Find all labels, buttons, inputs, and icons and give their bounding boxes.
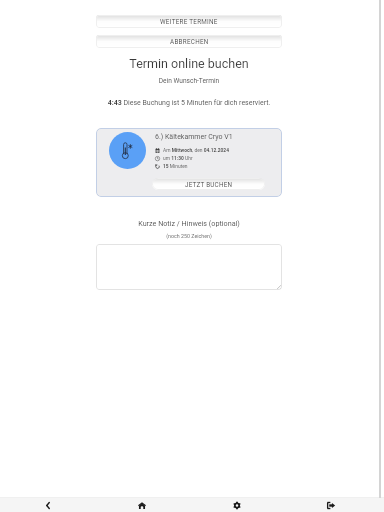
button[interactable]: WEITERE TERMINE	[96, 15, 282, 28]
button[interactable]: ABBRECHEN	[96, 35, 282, 48]
button[interactable]	[96, 244, 282, 290]
staticText: ABBRECHEN	[170, 38, 209, 45]
staticText: Dein Wunsch-Termin	[0, 77, 378, 85]
staticText: Am Mittwoch, den 04.12.2024	[163, 147, 229, 153]
staticText: Kurze Notiz / Hinweis (optional)	[0, 219, 378, 227]
button[interactable]: Home	[128, 498, 156, 512]
button[interactable]: Log out	[317, 498, 345, 512]
button[interactable]: 6.) Kältekammer Cryo V1	[96, 128, 282, 197]
button[interactable]: JETZT BUCHEN	[152, 178, 265, 190]
staticText: WEITERE TERMINE	[160, 18, 218, 25]
button[interactable]: Back	[34, 498, 62, 512]
staticText: um 11:30 Uhr	[163, 155, 193, 161]
staticText: Termin online buchen	[0, 56, 378, 71]
staticText: JETZT BUCHEN	[185, 181, 233, 188]
staticText: 4:43 Diese Buchung ist 5 Minuten für dic…	[0, 99, 378, 107]
button[interactable]: Settings	[223, 498, 251, 512]
staticText: (noch 250 Zeichen)	[0, 233, 378, 239]
staticText: 15 Minuten	[163, 163, 188, 169]
staticText: 6.) Kältekammer Cryo V1	[155, 133, 233, 141]
